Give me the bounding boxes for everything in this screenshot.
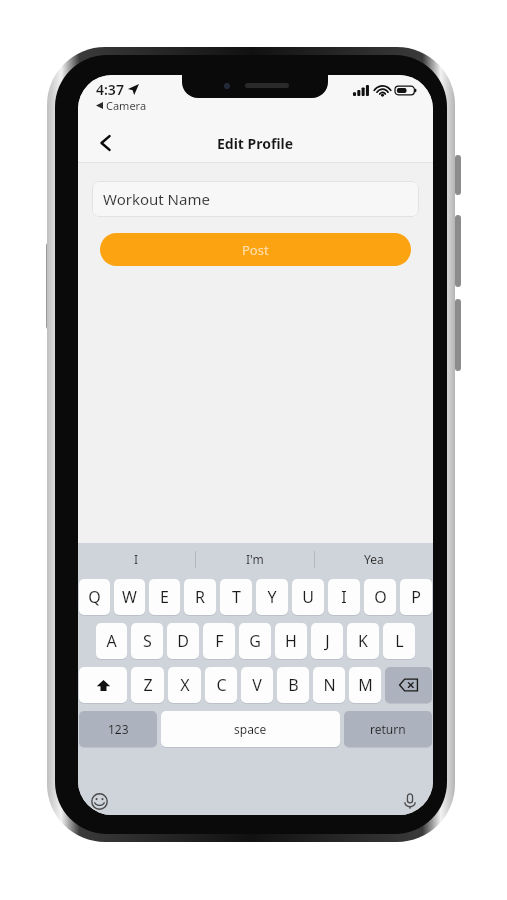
button[interactable]: M (349, 667, 381, 703)
staticText: Yea (364, 551, 384, 567)
staticText: R (195, 586, 205, 608)
button[interactable]: D (167, 623, 199, 659)
staticText: F (215, 630, 224, 652)
button[interactable]: Workout Name (92, 181, 419, 217)
staticText: 4:37 (96, 80, 124, 99)
button[interactable]: I (78, 543, 195, 575)
staticText: Edit Profile (217, 134, 294, 153)
staticText: 123 (108, 721, 129, 737)
button[interactable]: T (220, 579, 252, 615)
staticText: P (411, 586, 421, 608)
button[interactable]: L (383, 623, 415, 659)
staticText: D (177, 630, 189, 652)
button[interactable]: Post (100, 233, 411, 266)
button[interactable]: Shift (79, 667, 127, 703)
staticText: Z (143, 674, 153, 696)
staticText: V (252, 674, 262, 696)
staticText: E (160, 586, 169, 608)
button[interactable]: H (275, 623, 307, 659)
staticText: W (122, 586, 137, 608)
button[interactable]: 123 (79, 711, 157, 747)
button[interactable]: Q (79, 579, 110, 615)
staticText: Y (267, 586, 277, 608)
staticText: N (323, 674, 336, 696)
button[interactable]: R (184, 579, 216, 615)
button[interactable]: Yea (315, 543, 433, 575)
staticText: S (143, 630, 152, 652)
staticText: X (180, 674, 190, 696)
button[interactable]: K (347, 623, 379, 659)
button[interactable]: X (168, 667, 201, 703)
staticText: T (232, 586, 241, 608)
button[interactable]: B (277, 667, 309, 703)
staticText: O (374, 586, 387, 608)
button[interactable]: U (292, 579, 324, 615)
staticText: C (216, 674, 227, 696)
button[interactable]: P (400, 579, 432, 615)
staticText: Q (88, 586, 101, 608)
staticText: I'm (246, 551, 264, 567)
staticText: I (341, 586, 347, 608)
button[interactable]: I'm (196, 543, 314, 575)
button[interactable]: return (344, 711, 432, 747)
staticText: Workout Name (103, 189, 210, 209)
button[interactable]: I (328, 579, 360, 615)
button[interactable]: V (241, 667, 273, 703)
button[interactable]: S (131, 623, 163, 659)
button[interactable]: E (149, 579, 180, 615)
button[interactable]: Z (131, 667, 164, 703)
staticText: A (106, 630, 117, 652)
staticText: J (325, 630, 330, 652)
button[interactable]: F (203, 623, 235, 659)
staticText: I (134, 551, 139, 567)
button[interactable]: Dictation (399, 790, 421, 812)
button[interactable]: space (161, 711, 340, 747)
staticText: space (234, 721, 267, 737)
staticText: Post (242, 241, 269, 259)
staticText: Camera (106, 98, 147, 113)
button[interactable]: Emoji keyboard (88, 790, 110, 812)
staticText: U (302, 586, 314, 608)
button[interactable]: J (311, 623, 343, 659)
button[interactable]: Backspace (385, 667, 432, 703)
button[interactable]: N (313, 667, 345, 703)
staticText: B (288, 674, 299, 696)
button[interactable]: A (96, 623, 127, 659)
staticText: M (358, 674, 373, 696)
staticText: K (358, 630, 368, 652)
button[interactable]: Back (86, 123, 126, 163)
button[interactable]: C (205, 667, 237, 703)
staticText: G (249, 630, 261, 652)
staticText: L (395, 630, 404, 652)
button[interactable]: O (364, 579, 396, 615)
staticText: H (285, 630, 297, 652)
button[interactable]: G (239, 623, 271, 659)
button[interactable]: W (114, 579, 145, 615)
staticText: return (370, 721, 406, 737)
button[interactable]: Y (256, 579, 288, 615)
